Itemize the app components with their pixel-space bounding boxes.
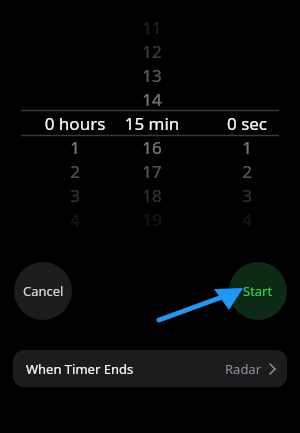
- staticText: 2: [23, 160, 127, 183]
- staticText: When Timer Ends: [26, 360, 134, 378]
- button[interactable]: When Timer Ends: [13, 350, 287, 387]
- staticText: Cancel: [23, 282, 64, 300]
- button[interactable]: Minutes picker: [107, 35, 197, 210]
- button[interactable]: Hours picker: [23, 35, 127, 210]
- staticText: 16: [107, 136, 197, 159]
- staticText: 0 sec: [202, 112, 292, 135]
- staticText: 17: [107, 160, 197, 183]
- staticText: 0 hours: [23, 112, 127, 135]
- staticText: 3: [202, 184, 292, 207]
- staticText: 13: [107, 64, 197, 87]
- staticText: 14: [107, 88, 197, 111]
- staticText: Radar: [225, 360, 262, 378]
- button[interactable]: Cancel: [14, 262, 72, 320]
- staticText: 2: [202, 160, 292, 183]
- staticText: 19: [107, 208, 197, 231]
- staticText: 18: [107, 184, 197, 207]
- button[interactable]: Start: [229, 262, 287, 320]
- staticText: 12: [107, 40, 197, 63]
- button[interactable]: Seconds picker: [202, 35, 292, 210]
- staticText: 15 min: [107, 112, 197, 135]
- staticText: 11: [107, 16, 197, 39]
- staticText: 3: [23, 184, 127, 207]
- staticText: Start: [243, 282, 273, 300]
- staticText: 1: [202, 136, 292, 159]
- staticText: 1: [23, 136, 127, 159]
